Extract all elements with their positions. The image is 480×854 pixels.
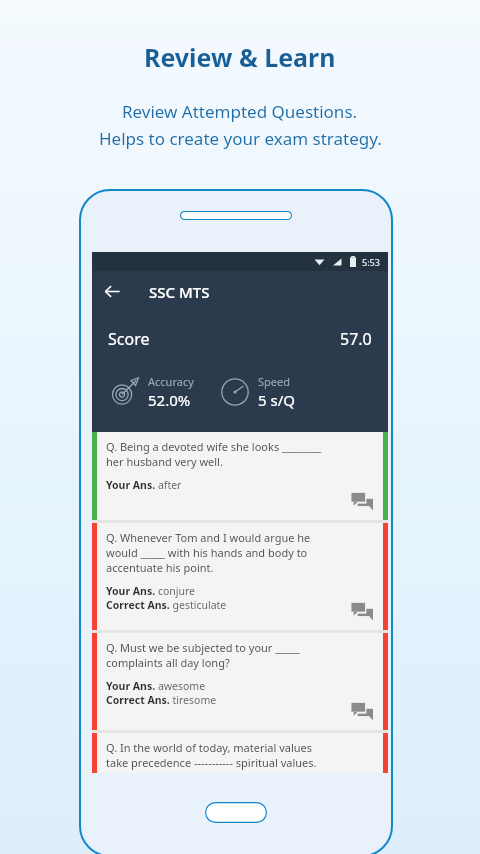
- button[interactable]: Q. Being a devoted wife she looks ______…: [92, 432, 388, 520]
- button[interactable]: Discuss: [351, 490, 373, 512]
- staticText: Helps to create your exam strategy.: [99, 127, 382, 150]
- button[interactable]: Q. In the world of today, material value…: [92, 733, 388, 773]
- staticText: Score: [108, 328, 150, 350]
- staticText: Your Ans. awesome: [106, 679, 206, 693]
- staticText: Your Ans. conjure: [106, 584, 196, 598]
- staticText: Correct Ans. gesticulate: [106, 598, 227, 612]
- button[interactable]: Discuss: [351, 700, 373, 722]
- staticText: 52.0%: [148, 390, 191, 410]
- staticText: 5:53: [362, 256, 380, 268]
- staticText: Q. Being a devoted wife she looks ______…: [106, 439, 322, 469]
- staticText: Speed: [258, 374, 290, 389]
- staticText: 57.0: [340, 328, 372, 350]
- staticText: 5 s/Q: [258, 390, 295, 410]
- staticText: Q. Must we be subjected to your _____ co…: [106, 640, 300, 670]
- button[interactable]: Home: [205, 802, 267, 823]
- staticText: Q. In the world of today, material value…: [106, 740, 317, 770]
- staticText: Your Ans. after: [106, 478, 182, 492]
- staticText: Accuracy: [148, 374, 194, 389]
- button[interactable]: Q. Whenever Tom and I would argue he wou…: [92, 523, 388, 630]
- staticText: Review Attempted Questions.: [122, 100, 358, 123]
- staticText: SSC MTS: [149, 282, 210, 302]
- staticText: Correct Ans. tiresome: [106, 693, 217, 707]
- staticText: Q. Whenever Tom and I would argue he wou…: [106, 530, 311, 575]
- button[interactable]: Discuss: [351, 600, 373, 622]
- staticText: Review & Learn: [144, 40, 336, 74]
- button[interactable]: Q. Must we be subjected to your _____ co…: [92, 633, 388, 730]
- button[interactable]: Back: [92, 271, 133, 312]
